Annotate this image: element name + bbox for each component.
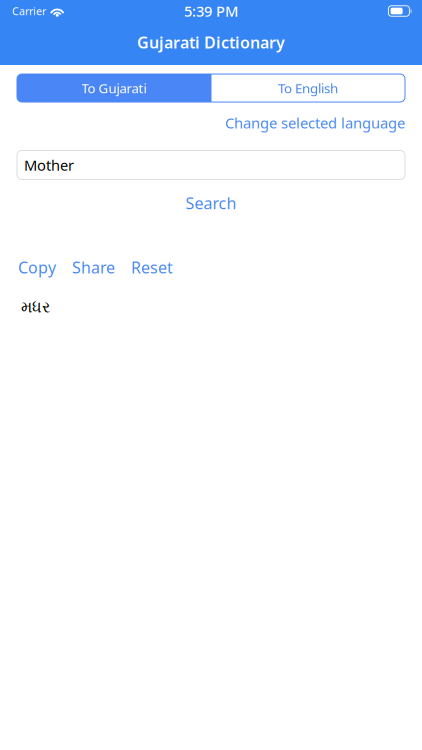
- staticText: 5:39 PM: [184, 1, 238, 21]
- button[interactable]: Change selected language: [225, 113, 405, 132]
- staticText: Share: [72, 257, 115, 278]
- staticText: મધર: [21, 300, 50, 316]
- button[interactable]: To English: [211, 74, 405, 102]
- staticText: Change selected language: [225, 113, 405, 132]
- button[interactable]: Copy: [18, 257, 56, 278]
- button[interactable]: Reset: [131, 257, 173, 278]
- staticText: Mother: [24, 155, 74, 175]
- staticText: Reset: [131, 257, 173, 278]
- button[interactable]: Mother: [17, 150, 405, 179]
- button[interactable]: To Gujarati: [17, 74, 211, 102]
- button[interactable]: Share: [72, 257, 115, 278]
- staticText: To English: [278, 79, 338, 97]
- staticText: Copy: [18, 257, 56, 278]
- staticText: Search: [185, 192, 236, 214]
- staticText: To Gujarati: [81, 79, 146, 97]
- button[interactable]: Search: [185, 192, 236, 214]
- staticText: Carrier: [12, 4, 46, 18]
- staticText: Gujarati Dictionary: [137, 32, 285, 53]
